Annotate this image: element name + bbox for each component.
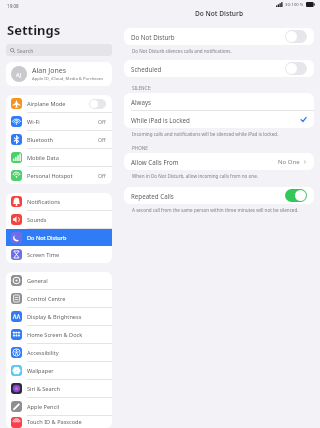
button[interactable]: Toggle on: [285, 189, 307, 202]
staticText: Apple Pencil: [27, 403, 106, 411]
staticText: While iPad is Locked: [131, 116, 300, 124]
button[interactable]: Wi-Fi: [6, 113, 112, 130]
button[interactable]: Allow Calls From: [124, 153, 314, 170]
staticText: A second call from the same person withi…: [132, 207, 299, 213]
staticText: Personal Hotspot: [27, 172, 98, 180]
button[interactable]: Scheduled: [124, 60, 314, 77]
staticText: Scheduled: [131, 65, 285, 73]
staticText: Display & Brightness: [27, 313, 106, 321]
staticText: Settings: [7, 21, 61, 39]
staticText: Always: [131, 98, 307, 106]
button[interactable]: Sounds: [6, 211, 112, 228]
staticText: Screen Time: [27, 251, 106, 259]
button[interactable]: Toggle off: [89, 99, 106, 109]
button[interactable]: Do Not Disturb: [124, 28, 314, 45]
staticText: Bluetooth: [27, 136, 98, 144]
staticText: Apple ID, iCloud, Media & Purchases: [32, 76, 104, 82]
button[interactable]: Mobile Data: [6, 149, 112, 166]
staticText: Search: [17, 47, 34, 54]
staticText: No One: [278, 158, 300, 166]
staticText: Allow Calls From: [131, 158, 278, 166]
staticText: Airplane Mode: [27, 100, 89, 108]
staticText: Siri & Search: [27, 385, 106, 393]
staticText: Touch ID & Passcode: [27, 418, 106, 426]
staticText: Mobile Data: [27, 154, 106, 162]
button[interactable]: While iPad is Locked: [124, 111, 314, 128]
staticText: Wallpaper: [27, 367, 106, 375]
button[interactable]: Display & Brightness: [6, 308, 112, 325]
button[interactable]: Toggle off: [285, 62, 307, 75]
staticText: SILENCE:: [132, 85, 152, 91]
button[interactable]: Bluetooth: [6, 131, 112, 148]
button[interactable]: Wallpaper: [6, 362, 112, 379]
button[interactable]: Personal Hotspot: [6, 167, 112, 184]
button[interactable]: Apple Pencil: [6, 398, 112, 415]
button[interactable]: Do Not Disturb: [6, 229, 112, 246]
staticText: Off: [98, 136, 106, 143]
button[interactable]: Accessibility: [6, 344, 112, 361]
button[interactable]: Search: [6, 44, 112, 56]
staticText: Accessibility: [27, 349, 106, 357]
staticText: Home Screen & Dock: [27, 331, 106, 339]
staticText: Sounds: [27, 216, 106, 224]
button[interactable]: Repeated Calls: [124, 187, 314, 204]
button[interactable]: Home Screen & Dock: [6, 326, 112, 343]
button[interactable]: Always: [124, 93, 314, 110]
button[interactable]: Toggle off: [285, 30, 307, 43]
staticText: When in Do Not Disturb, allow incoming c…: [132, 173, 259, 179]
button[interactable]: Notifications: [6, 193, 112, 210]
staticText: PHONE: [132, 145, 148, 151]
staticText: Control Centre: [27, 295, 106, 303]
staticText: Do Not Disturb: [27, 234, 106, 242]
staticText: Notifications: [27, 198, 106, 206]
staticText: 3G 100 %: [285, 2, 304, 8]
staticText: 19:08: [7, 3, 19, 9]
button[interactable]: Siri & Search: [6, 380, 112, 397]
button[interactable]: Airplane Mode: [6, 95, 112, 112]
staticText: Do Not Disturb silences calls and notifi…: [132, 48, 232, 54]
staticText: Incoming calls and notifications will be…: [132, 131, 279, 137]
button[interactable]: General: [6, 272, 112, 289]
staticText: Alan Jones: [32, 66, 67, 76]
staticText: Off: [98, 172, 106, 179]
staticText: General: [27, 277, 106, 285]
button[interactable]: Screen Time: [6, 246, 112, 263]
staticText: Do Not Disturb: [118, 9, 320, 18]
button[interactable]: Control Centre: [6, 290, 112, 307]
button[interactable]: Touch ID & Passcode: [6, 416, 112, 428]
staticText: Do Not Disturb: [131, 33, 285, 41]
staticText: Repeated Calls: [131, 192, 285, 200]
button[interactable]: AJ: [6, 62, 112, 86]
staticText: Off: [98, 118, 106, 125]
staticText: AJ: [16, 71, 22, 78]
staticText: Wi-Fi: [27, 118, 98, 126]
